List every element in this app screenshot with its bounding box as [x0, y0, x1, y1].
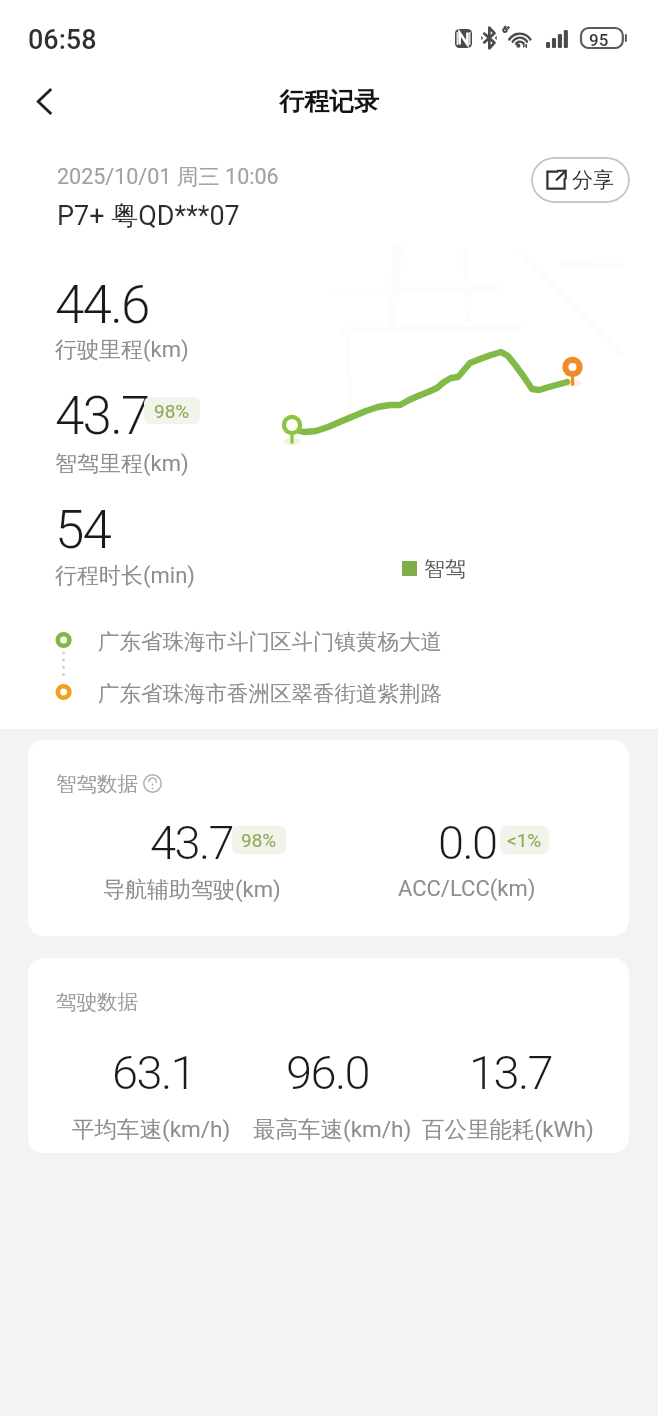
staticText: 43.7: [150, 815, 234, 870]
staticText: 98%: [154, 400, 190, 422]
staticText: 驾驶数据: [56, 989, 138, 1015]
staticText: 43.7: [55, 385, 149, 447]
staticText: 平均车速(km/h): [72, 1115, 231, 1143]
staticText: 06:58: [28, 24, 97, 56]
staticText: P7+ 粤QD***07: [57, 199, 240, 233]
staticText: 2025/10/01 周三 10:06: [57, 163, 279, 190]
button[interactable]: 驾驶数据: [28, 958, 629, 1153]
staticText: 最高车速(km/h): [253, 1115, 412, 1143]
staticText: 行程时长(min): [55, 562, 195, 590]
staticText: 导航辅助驾驶(km): [103, 876, 281, 904]
staticText: 98%: [241, 829, 277, 851]
staticText: 广东省珠海市斗门区斗门镇黄杨大道: [98, 628, 442, 655]
staticText: 95: [589, 30, 609, 50]
staticText: 44.6: [55, 274, 149, 336]
staticText: 分享: [572, 167, 614, 193]
staticText: 96.0: [286, 1045, 370, 1100]
staticText: <1%: [507, 829, 542, 851]
button[interactable]: 分享: [531, 157, 630, 203]
staticText: 百公里能耗(kWh): [422, 1115, 594, 1143]
staticText: 0.0: [438, 815, 497, 870]
staticText: 63.1: [112, 1045, 196, 1100]
staticText: 智驾: [424, 556, 466, 582]
staticText: 智驾里程(km): [55, 450, 189, 478]
staticText: 广东省珠海市香洲区翠香街道紫荆路: [98, 680, 442, 707]
staticText: ACC/LCC(km): [398, 876, 536, 902]
staticText: 行驶里程(km): [55, 336, 189, 364]
button[interactable]: 智驾数据: [28, 740, 629, 936]
button[interactable]: Back: [14, 71, 74, 131]
staticText: 54: [55, 499, 111, 561]
staticText: 智驾数据: [56, 771, 138, 797]
staticText: 行程记录: [279, 86, 379, 117]
staticText: 13.7: [469, 1045, 553, 1100]
